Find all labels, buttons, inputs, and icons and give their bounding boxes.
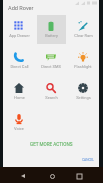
button[interactable]: Settings — [67, 77, 99, 108]
staticText: CANCEL — [82, 158, 95, 162]
button[interactable]: Home — [3, 77, 35, 108]
button[interactable]: Search — [35, 77, 67, 108]
staticText: App Drawer — [9, 33, 30, 38]
staticText: Home — [14, 95, 25, 100]
button[interactable]: Direct SMS — [35, 46, 67, 77]
button[interactable]: Flashlight — [67, 46, 99, 77]
button[interactable]: App Drawer — [3, 15, 35, 46]
staticText: Direct SMS — [41, 64, 61, 69]
staticText: Flashlight — [74, 64, 92, 69]
staticText: Settings — [76, 95, 91, 100]
staticText: Battery — [45, 33, 58, 38]
staticText: Search — [45, 95, 58, 100]
button[interactable]: Home — [44, 168, 60, 183]
staticText: GET MORE ACTIONS — [30, 142, 73, 147]
button[interactable]: Back — [15, 168, 31, 183]
button[interactable]: Direct Call — [3, 46, 35, 77]
staticText: Direct Call — [10, 64, 29, 69]
button[interactable]: GET MORE ACTIONS — [3, 139, 99, 149]
staticText: Voice — [14, 126, 24, 131]
staticText: Add Rover — [8, 5, 34, 12]
button[interactable]: Battery — [35, 15, 67, 46]
button[interactable]: CANCEL — [77, 155, 99, 165]
button[interactable]: Clear Ram — [67, 15, 99, 46]
button[interactable]: Voice — [3, 108, 35, 139]
button[interactable]: Recent apps — [71, 168, 87, 183]
staticText: Clear Ram — [74, 33, 93, 38]
